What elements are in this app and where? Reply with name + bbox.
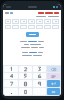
button[interactable]: [28, 19, 35, 24]
button[interactable]: [44, 25, 51, 29]
button[interactable]: [4, 66, 18, 72]
button[interactable]: [12, 25, 19, 29]
button[interactable]: [36, 19, 43, 24]
button[interactable]: [5, 25, 11, 29]
button[interactable]: [33, 66, 46, 72]
button[interactable]: [4, 88, 18, 95]
button[interactable]: Clear: [47, 73, 60, 79]
button[interactable]: Submit: [47, 88, 60, 95]
button[interactable]: [12, 19, 19, 24]
button[interactable]: [19, 80, 32, 87]
button[interactable]: [26, 32, 39, 37]
button[interactable]: [33, 73, 46, 79]
button[interactable]: Backspace: [47, 66, 60, 72]
button[interactable]: [5, 19, 11, 24]
button[interactable]: [28, 25, 35, 29]
button[interactable]: [19, 66, 32, 72]
button[interactable]: [4, 73, 18, 79]
button[interactable]: Enter: [47, 80, 60, 87]
button[interactable]: [20, 25, 27, 29]
button[interactable]: [52, 19, 59, 24]
button[interactable]: [44, 19, 51, 24]
button[interactable]: [4, 80, 18, 87]
button[interactable]: [36, 25, 43, 29]
button[interactable]: [19, 88, 32, 95]
button[interactable]: [19, 73, 32, 79]
button[interactable]: [20, 19, 27, 24]
button[interactable]: [33, 80, 46, 87]
button[interactable]: [52, 25, 59, 29]
